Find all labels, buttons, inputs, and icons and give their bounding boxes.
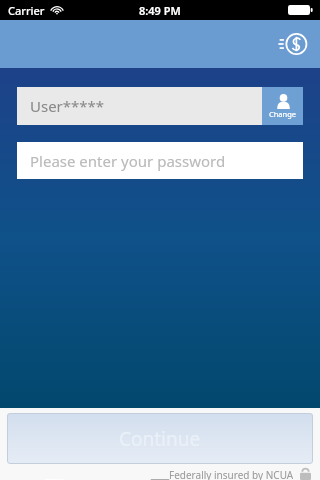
button[interactable]: Quick balance xyxy=(270,24,310,64)
button[interactable]: Please enter your password xyxy=(17,142,303,179)
staticText: Carrier xyxy=(8,3,45,18)
staticText: User***** xyxy=(30,96,105,116)
button[interactable]: Continue xyxy=(7,413,313,464)
staticText: Federally insured by NCUA xyxy=(169,468,294,480)
staticText: Continue xyxy=(119,426,201,452)
button[interactable]: User***** xyxy=(17,87,262,125)
button[interactable]: Change xyxy=(262,87,303,125)
staticText: Change xyxy=(269,109,297,119)
staticText: 8:49 PM xyxy=(139,3,181,18)
staticText: Please enter your password xyxy=(30,151,226,171)
